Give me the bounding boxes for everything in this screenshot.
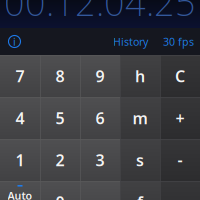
- staticText: -: [177, 149, 182, 171]
- button[interactable]: m: [120, 97, 160, 139]
- button[interactable]: Info: [0, 28, 29, 55]
- button[interactable]: s: [120, 139, 160, 181]
- staticText: 4: [15, 107, 24, 129]
- staticText: Auto: [7, 189, 32, 200]
- button[interactable]: -: [160, 139, 200, 181]
- staticText: 3: [95, 149, 104, 171]
- staticText: History: [113, 34, 148, 49]
- button[interactable]: 1: [0, 139, 40, 181]
- staticText: 6: [95, 107, 104, 129]
- staticText: m: [132, 107, 147, 129]
- staticText: 0: [55, 191, 64, 200]
- staticText: C: [175, 65, 185, 87]
- button[interactable]: .: [80, 181, 120, 200]
- button[interactable]: =: [160, 181, 200, 200]
- staticText: 1: [15, 149, 24, 171]
- staticText: 8: [55, 65, 64, 87]
- staticText: 30 fps: [163, 34, 194, 49]
- staticText: f: [137, 191, 143, 200]
- staticText: s: [136, 149, 144, 171]
- button[interactable]: 2: [40, 139, 80, 181]
- button[interactable]: Auto: [0, 181, 40, 200]
- button[interactable]: 6: [80, 97, 120, 139]
- button[interactable]: 9: [80, 55, 120, 97]
- staticText: h: [135, 65, 145, 87]
- button[interactable]: 30 fps: [159, 29, 198, 53]
- button[interactable]: +: [160, 97, 200, 139]
- button[interactable]: History: [109, 29, 152, 53]
- staticText: +: [175, 107, 184, 129]
- staticText: 2: [55, 149, 64, 171]
- button[interactable]: 0: [40, 181, 80, 200]
- button[interactable]: C: [160, 55, 200, 97]
- button[interactable]: h: [120, 55, 160, 97]
- staticText: 9: [95, 65, 104, 87]
- button[interactable]: 8: [40, 55, 80, 97]
- button[interactable]: f: [120, 181, 160, 200]
- button[interactable]: 7: [0, 55, 40, 97]
- staticText: 5: [55, 107, 64, 129]
- button[interactable]: 5: [40, 97, 80, 139]
- button[interactable]: 3: [80, 139, 120, 181]
- button[interactable]: 4: [0, 97, 40, 139]
- staticText: i: [13, 34, 16, 49]
- staticText: 7: [15, 65, 24, 87]
- staticText: 00:12.04:25: [4, 0, 196, 26]
